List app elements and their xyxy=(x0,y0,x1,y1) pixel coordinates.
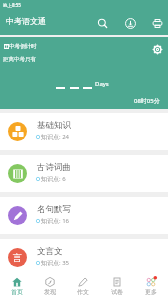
button[interactable]: 首页 xyxy=(0,274,33,300)
staticText: 首页 xyxy=(11,288,23,296)
staticText: 晚上8:55 xyxy=(3,2,21,8)
staticText: 基础知识 xyxy=(37,120,71,131)
staticText: 知识点: 16 xyxy=(41,217,70,225)
staticText: 知识点: 24 xyxy=(41,133,70,141)
button[interactable]: Settings xyxy=(153,45,162,54)
staticText: 08时05分 xyxy=(134,97,160,105)
button[interactable]: Download xyxy=(121,14,139,32)
button[interactable]: Search xyxy=(93,14,111,32)
staticText: Days xyxy=(95,80,109,88)
button[interactable]: 基础知识 xyxy=(0,113,168,150)
staticText: 距离中考只有 xyxy=(3,56,36,63)
staticText: 中考倒计时 xyxy=(9,43,37,50)
staticText: 古诗词曲 xyxy=(37,162,71,173)
staticText: 文言文 xyxy=(37,246,63,257)
button[interactable]: 名句默写 xyxy=(0,197,168,234)
staticText: 更多 xyxy=(145,288,157,296)
button[interactable]: 古诗词曲 xyxy=(0,155,168,192)
staticText: 作文 xyxy=(77,288,89,296)
button[interactable]: 作文 xyxy=(66,274,100,300)
button[interactable]: Print xyxy=(148,14,166,32)
staticText: 言 xyxy=(13,252,22,263)
button[interactable]: 言 xyxy=(0,239,168,276)
button[interactable]: 发现 xyxy=(33,274,66,300)
staticText: 中考语文通 xyxy=(6,16,46,26)
button[interactable]: 试卷 xyxy=(100,274,134,300)
staticText: 知识点: 35 xyxy=(41,259,70,267)
staticText: 发现 xyxy=(44,288,56,296)
button[interactable]: 更多 xyxy=(134,274,168,300)
staticText: 试卷 xyxy=(111,288,123,296)
staticText: 知识点: 6 xyxy=(41,175,66,183)
staticText: 名句默写 xyxy=(37,204,71,215)
